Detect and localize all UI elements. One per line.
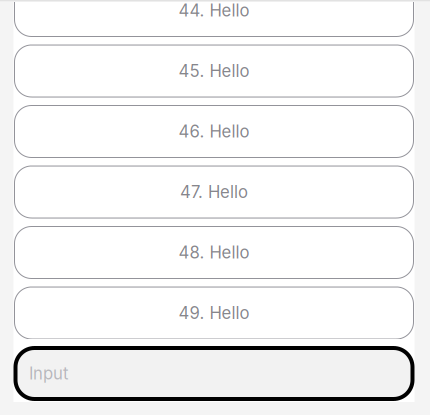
button[interactable]: 47. Hello xyxy=(14,166,413,218)
staticText: 48. Hello xyxy=(178,242,249,263)
button[interactable]: Input xyxy=(15,348,412,399)
button[interactable]: 46. Hello xyxy=(14,105,413,157)
button[interactable]: 45. Hello xyxy=(14,45,413,97)
button[interactable]: 44. Hello xyxy=(14,0,413,36)
staticText: 49. Hello xyxy=(178,303,249,323)
button[interactable]: 49. Hello xyxy=(14,287,413,339)
staticText: 46. Hello xyxy=(178,121,249,142)
staticText: 44. Hello xyxy=(178,0,249,21)
staticText: Input xyxy=(29,363,68,384)
button[interactable]: 48. Hello xyxy=(14,226,413,278)
staticText: 45. Hello xyxy=(178,61,249,81)
staticText: 47. Hello xyxy=(180,182,248,202)
